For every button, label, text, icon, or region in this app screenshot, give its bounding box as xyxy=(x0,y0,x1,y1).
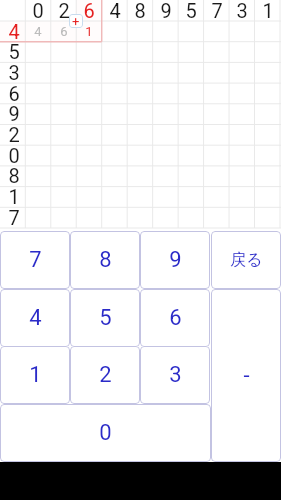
staticText: 8 xyxy=(99,247,112,273)
staticText: 1 xyxy=(262,0,274,20)
staticText: 5 xyxy=(185,0,197,20)
staticText: 5 xyxy=(8,40,20,61)
staticText: 1 xyxy=(8,185,20,206)
staticText: 0 xyxy=(99,420,112,446)
staticText: 8 xyxy=(8,164,20,185)
staticText: 2 xyxy=(99,362,112,388)
staticText: 1 xyxy=(29,362,42,388)
staticText: + xyxy=(72,14,80,28)
staticText: 8 xyxy=(134,0,146,20)
button[interactable]: 9 xyxy=(140,231,210,289)
button[interactable]: 6 xyxy=(140,289,210,347)
staticText: 4 xyxy=(8,20,20,41)
staticText: 4 xyxy=(29,305,42,331)
button[interactable]: - xyxy=(211,289,281,462)
staticText: 4 xyxy=(109,0,121,20)
staticText: 6 xyxy=(83,0,95,20)
button[interactable]: 2 xyxy=(70,346,140,404)
staticText: 5 xyxy=(99,305,112,331)
staticText: 7 xyxy=(8,206,20,227)
staticText: 9 xyxy=(160,0,172,20)
button[interactable]: 0 xyxy=(0,404,211,462)
button[interactable]: 1 xyxy=(0,346,70,404)
staticText: 6 xyxy=(169,305,182,331)
staticText: 6 xyxy=(60,24,68,39)
staticText: 0 xyxy=(32,0,44,20)
button[interactable]: 4 xyxy=(0,289,70,347)
other: Operator plus xyxy=(69,14,83,28)
staticText: 7 xyxy=(29,247,42,273)
staticText: 9 xyxy=(8,102,20,123)
button[interactable]: 8 xyxy=(70,231,140,289)
staticText: 3 xyxy=(169,362,182,388)
staticText: 9 xyxy=(169,247,182,273)
staticText: 2 xyxy=(58,0,70,20)
staticText: 3 xyxy=(8,61,20,82)
staticText: 2 xyxy=(8,123,20,144)
staticText: 戻る xyxy=(230,250,263,270)
button[interactable]: 3 xyxy=(140,346,210,404)
button[interactable]: 7 xyxy=(0,231,70,289)
staticText: - xyxy=(243,363,250,389)
staticText: 3 xyxy=(236,0,248,20)
staticText: 7 xyxy=(211,0,223,20)
button[interactable]: 5 xyxy=(70,289,140,347)
button[interactable]: 戻る xyxy=(211,231,281,289)
staticText: 6 xyxy=(8,82,20,103)
staticText: 0 xyxy=(8,144,20,165)
staticText: 1 xyxy=(85,24,93,39)
staticText: 4 xyxy=(34,24,42,39)
